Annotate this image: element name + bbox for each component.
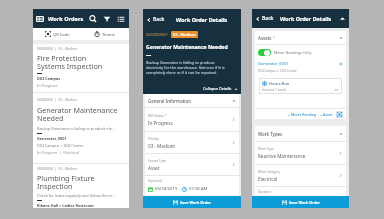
button[interactable]: 000000002 | 03 - Medium: [33, 44, 129, 92]
button[interactable]: 000000001 | 03 - Medium: [33, 93, 129, 163]
staticText: Timers: [102, 32, 116, 37]
button[interactable]: Sort: [117, 15, 125, 23]
staticText: DGI Campus > DGI Center: [37, 143, 84, 148]
button[interactable]: Menu: [36, 15, 44, 23]
staticText: Work Order Details: [176, 16, 228, 23]
staticText: Meter Readings Only: [274, 50, 312, 55]
button[interactable]: 000000006 | 03 - Medium: [33, 164, 129, 208]
staticText: 03 - Medium: [148, 143, 176, 149]
staticText: Work Types: [258, 131, 283, 137]
staticText: Back: [153, 16, 165, 23]
button[interactable]: + Meter Reading: [288, 112, 317, 117]
staticText: Back: [262, 15, 274, 22]
staticText: 06/28/2019: [155, 186, 178, 192]
staticText: QR Code: [53, 32, 70, 37]
staticText: Assets: [258, 35, 272, 41]
staticText: Fire Protection Systems Inspection: [37, 53, 103, 71]
staticText: Save Work Order: [180, 200, 211, 205]
button[interactable]: Timers: [81, 28, 129, 40]
button[interactable]: General Information: [145, 94, 239, 107]
staticText: Generator Maintenance Needed: [37, 105, 118, 123]
staticText: 10: [334, 88, 339, 91]
staticText: In Progress: [148, 120, 173, 126]
button[interactable]: Meter Readings Only toggle: [258, 49, 271, 56]
staticText: Rihans Hall > Ladies Restroom: [37, 203, 94, 208]
staticText: Generator_0001: [37, 136, 67, 141]
staticText: Generator Maintenance Needed: [146, 44, 228, 51]
staticText: DGI Campus: [37, 76, 61, 81]
staticText: Priority: [148, 137, 159, 141]
button[interactable]: Work Category: [255, 165, 346, 186]
staticText: Backup Generator is failing to produce e…: [37, 126, 115, 131]
button[interactable]: + Asset: [320, 112, 333, 117]
staticText: 000000285F: [146, 32, 168, 37]
staticText: Source Type: [148, 159, 167, 163]
staticText: WO Status *: [148, 114, 167, 118]
staticText: In Progress: [37, 83, 58, 88]
staticText: Collapse Details: [203, 86, 232, 91]
staticText: 000000006 | 03 - Medium: [37, 167, 78, 171]
staticText: 000000002 | 03 - Medium: [37, 47, 78, 51]
button[interactable]: Assets: [255, 31, 346, 44]
staticText: Work Type: [258, 147, 274, 151]
button[interactable]: Collapse Details: [203, 86, 238, 91]
staticText: DGI Campus > DGI Center: [258, 69, 297, 73]
staticText: 07:58 AM: [189, 186, 208, 192]
staticText: Duration: [258, 190, 272, 193]
button[interactable]: Work Type: [255, 142, 346, 164]
staticText: Interval: 1 week: [262, 88, 286, 91]
staticText: Generator_0001: [258, 61, 289, 66]
button[interactable]: Search: [89, 15, 97, 23]
staticText: Work Orders: [48, 15, 84, 23]
button[interactable]: Scan QR: [336, 111, 343, 118]
staticText: Check for leaks regularly and follow the…: [37, 193, 115, 198]
staticText: Asset: [148, 165, 160, 171]
button[interactable]: Work Types: [255, 126, 346, 141]
staticText: Hours Run: [269, 81, 290, 86]
button[interactable]: Priority: [145, 132, 239, 153]
button[interactable]: Filter: [103, 15, 111, 23]
staticText: General Information: [148, 98, 191, 104]
button[interactable]: Back: [255, 15, 274, 22]
button[interactable]: Collapse: [339, 15, 346, 22]
button[interactable]: WO Status *: [145, 108, 239, 131]
staticText: Plumbing Fixture Inspection: [37, 173, 95, 191]
button[interactable]: Back: [146, 16, 165, 23]
staticText: 000000001 | 03 - Medium: [37, 98, 78, 102]
button[interactable]: Save Work Order: [143, 196, 241, 208]
staticText: In Progress | Electrical: [37, 150, 80, 155]
staticText: Expected: [148, 179, 162, 183]
staticText: Backup Generator is failing to produce e…: [146, 60, 225, 75]
staticText: 03 - Medium: [173, 32, 196, 37]
staticText: *: [273, 36, 275, 40]
staticText: Work Order Details: [280, 15, 332, 22]
staticText: Reactive Maintenance: [258, 153, 306, 159]
staticText: Save Work Order: [289, 200, 320, 205]
button[interactable]: Save Work Order: [252, 196, 349, 208]
staticText: Work Category: [258, 170, 281, 174]
button[interactable]: QR Code: [33, 28, 81, 40]
button[interactable]: Source Type: [145, 154, 239, 175]
staticText: Electrical: [258, 176, 278, 182]
